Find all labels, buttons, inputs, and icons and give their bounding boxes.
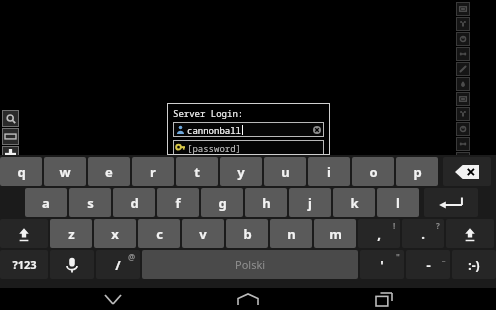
staticText: @: [128, 251, 136, 262]
button[interactable]: Add: [2, 146, 19, 163]
staticText: v: [199, 225, 207, 243]
staticText: q: [17, 163, 26, 181]
staticText: ?: [436, 220, 440, 231]
staticText: t: [194, 163, 200, 181]
button[interactable]: Blade: [456, 107, 470, 121]
button[interactable]: a: [25, 188, 67, 217]
button[interactable]: Flask: [456, 122, 470, 136]
staticText: u: [281, 163, 290, 181]
button[interactable]: g: [201, 188, 243, 217]
button[interactable]: r: [132, 157, 174, 186]
staticText: g: [218, 194, 227, 212]
button[interactable]: Power: [456, 47, 470, 61]
button[interactable]: Backspace: [443, 157, 491, 186]
button[interactable]: m: [314, 219, 356, 248]
staticText: n: [287, 225, 296, 243]
staticText: c: [156, 225, 163, 243]
button[interactable]: Enter: [424, 188, 478, 217]
button[interactable]: Voice input: [50, 250, 94, 279]
staticText: k: [350, 194, 359, 212]
staticText: Server Login:: [173, 107, 244, 119]
button[interactable]: ': [360, 250, 404, 279]
button[interactable]: Network: [456, 62, 470, 76]
button[interactable]: Space: [142, 250, 358, 279]
button[interactable]: Search: [2, 110, 19, 127]
staticText: i: [327, 163, 331, 181]
staticText: !: [393, 220, 396, 231]
button[interactable]: Shift: [446, 219, 494, 248]
staticText: ": [396, 251, 400, 262]
staticText: ': [380, 256, 384, 274]
button[interactable]: Hide keyboard: [90, 288, 136, 310]
button[interactable]: p: [396, 157, 438, 186]
staticText: e: [105, 163, 113, 181]
button[interactable]: cannonball: [173, 122, 324, 137]
button[interactable]: v: [182, 219, 224, 248]
button[interactable]: o: [352, 157, 394, 186]
staticText: h: [262, 194, 271, 212]
button[interactable]: x: [94, 219, 136, 248]
staticText: -: [426, 256, 431, 274]
staticText: ,: [377, 225, 381, 243]
button[interactable]: Flask two: [456, 137, 470, 151]
button[interactable]: Emoticons: [452, 250, 496, 279]
button[interactable]: c: [138, 219, 180, 248]
staticText: :-): [468, 257, 480, 273]
staticText: m: [329, 225, 342, 243]
staticText: z: [68, 225, 75, 243]
button[interactable]: y: [220, 157, 262, 186]
button[interactable]: f: [157, 188, 199, 217]
staticText: f: [175, 194, 181, 212]
staticText: a: [42, 194, 50, 212]
button[interactable]: Device: [456, 152, 470, 166]
button[interactable]: b: [226, 219, 268, 248]
button[interactable]: Home: [225, 288, 271, 310]
button[interactable]: Clear text: [313, 126, 321, 134]
staticText: [password]: [187, 142, 242, 154]
button[interactable]: j: [289, 188, 331, 217]
staticText: b: [243, 225, 252, 243]
staticText: Polski: [235, 257, 266, 272]
button[interactable]: Scan: [456, 77, 470, 91]
button[interactable]: d: [113, 188, 155, 217]
button[interactable]: Plug two: [456, 32, 470, 46]
button[interactable]: z: [50, 219, 92, 248]
staticText: p: [413, 163, 422, 181]
staticText: j: [308, 194, 312, 212]
staticText: cannonball: [187, 124, 242, 136]
button[interactable]: Toolbar: [2, 128, 19, 145]
button[interactable]: q: [0, 157, 42, 186]
button[interactable]: l: [377, 188, 419, 217]
staticText: o: [369, 163, 378, 181]
button[interactable]: Plug: [456, 17, 470, 31]
button[interactable]: Shift: [0, 219, 48, 248]
staticText: _: [442, 251, 446, 262]
button[interactable]: k: [333, 188, 375, 217]
staticText: w: [59, 163, 71, 181]
button[interactable]: u: [264, 157, 306, 186]
button[interactable]: s: [69, 188, 111, 217]
staticText: d: [130, 194, 139, 212]
button[interactable]: Scan two: [456, 92, 470, 106]
button[interactable]: -: [406, 250, 450, 279]
button[interactable]: w: [44, 157, 86, 186]
button[interactable]: e: [88, 157, 130, 186]
staticText: r: [150, 163, 156, 181]
staticText: ?123: [12, 257, 37, 272]
button[interactable]: /: [96, 250, 140, 279]
staticText: x: [111, 225, 119, 243]
button[interactable]: Recent apps: [361, 288, 407, 310]
button[interactable]: Inventory: [456, 2, 470, 16]
button[interactable]: i: [308, 157, 350, 186]
staticText: /: [115, 256, 121, 274]
staticText: s: [87, 194, 94, 212]
staticText: .: [421, 225, 425, 243]
button[interactable]: n: [270, 219, 312, 248]
staticText: y: [237, 163, 245, 181]
button[interactable]: h: [245, 188, 287, 217]
button[interactable]: ,: [358, 219, 400, 248]
button[interactable]: t: [176, 157, 218, 186]
button[interactable]: Symbols: [0, 250, 48, 279]
button[interactable]: [password]: [173, 140, 324, 155]
button[interactable]: .: [402, 219, 444, 248]
